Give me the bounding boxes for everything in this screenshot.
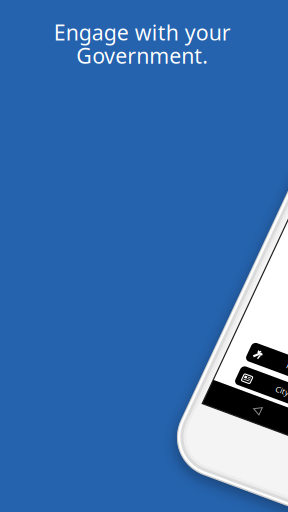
staticText: Engage with your Government. [53,18,230,70]
